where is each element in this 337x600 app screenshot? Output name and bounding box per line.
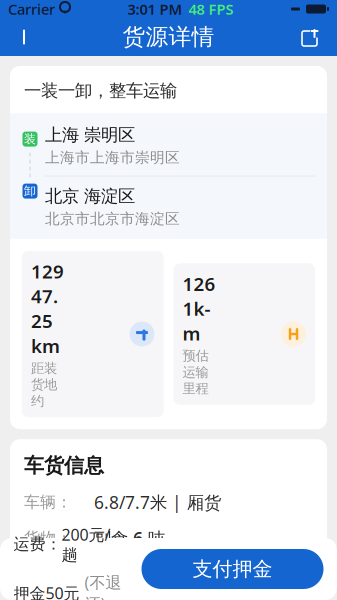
staticText: 北京市北京市海淀区 <box>45 210 180 228</box>
staticText: 200元/趟 <box>61 524 110 565</box>
staticText: 12947.25km <box>31 259 64 358</box>
staticText: 距装货地约 <box>31 360 57 409</box>
staticText: 车货信息 <box>24 453 104 478</box>
staticText: 货物： <box>24 528 72 548</box>
staticText: 48 FPS <box>188 0 233 19</box>
staticText: 6.8/7.7米 | 厢货 <box>94 491 221 514</box>
staticText: 1261km <box>182 271 215 346</box>
staticText: 副食 6 吨 <box>94 527 165 550</box>
staticText: 装 <box>24 132 36 146</box>
staticText: 运费： <box>13 534 61 554</box>
staticText: 卸 <box>24 184 36 198</box>
staticText: 押金50元 <box>13 582 84 600</box>
button[interactable]: 返回 <box>4 18 48 56</box>
staticText: 货源详情 <box>122 23 214 51</box>
staticText: 3:01 PM <box>127 0 182 19</box>
staticText: 一装一卸，整车运输 <box>24 80 177 101</box>
staticText: 北京 海淀区 <box>45 186 135 207</box>
staticText: 上海市上海市崇明区 <box>45 149 180 167</box>
staticText: (不退还) <box>84 572 121 600</box>
staticText: Carrier <box>8 0 55 19</box>
button[interactable]: 分享 <box>289 18 333 56</box>
button[interactable]: 支付押金 <box>141 549 323 589</box>
staticText: 上海 崇明区 <box>45 124 135 146</box>
staticText: 车辆： <box>24 492 72 512</box>
staticText: 支付押金 <box>192 557 272 581</box>
staticText: 预估运输里程 <box>182 348 208 397</box>
